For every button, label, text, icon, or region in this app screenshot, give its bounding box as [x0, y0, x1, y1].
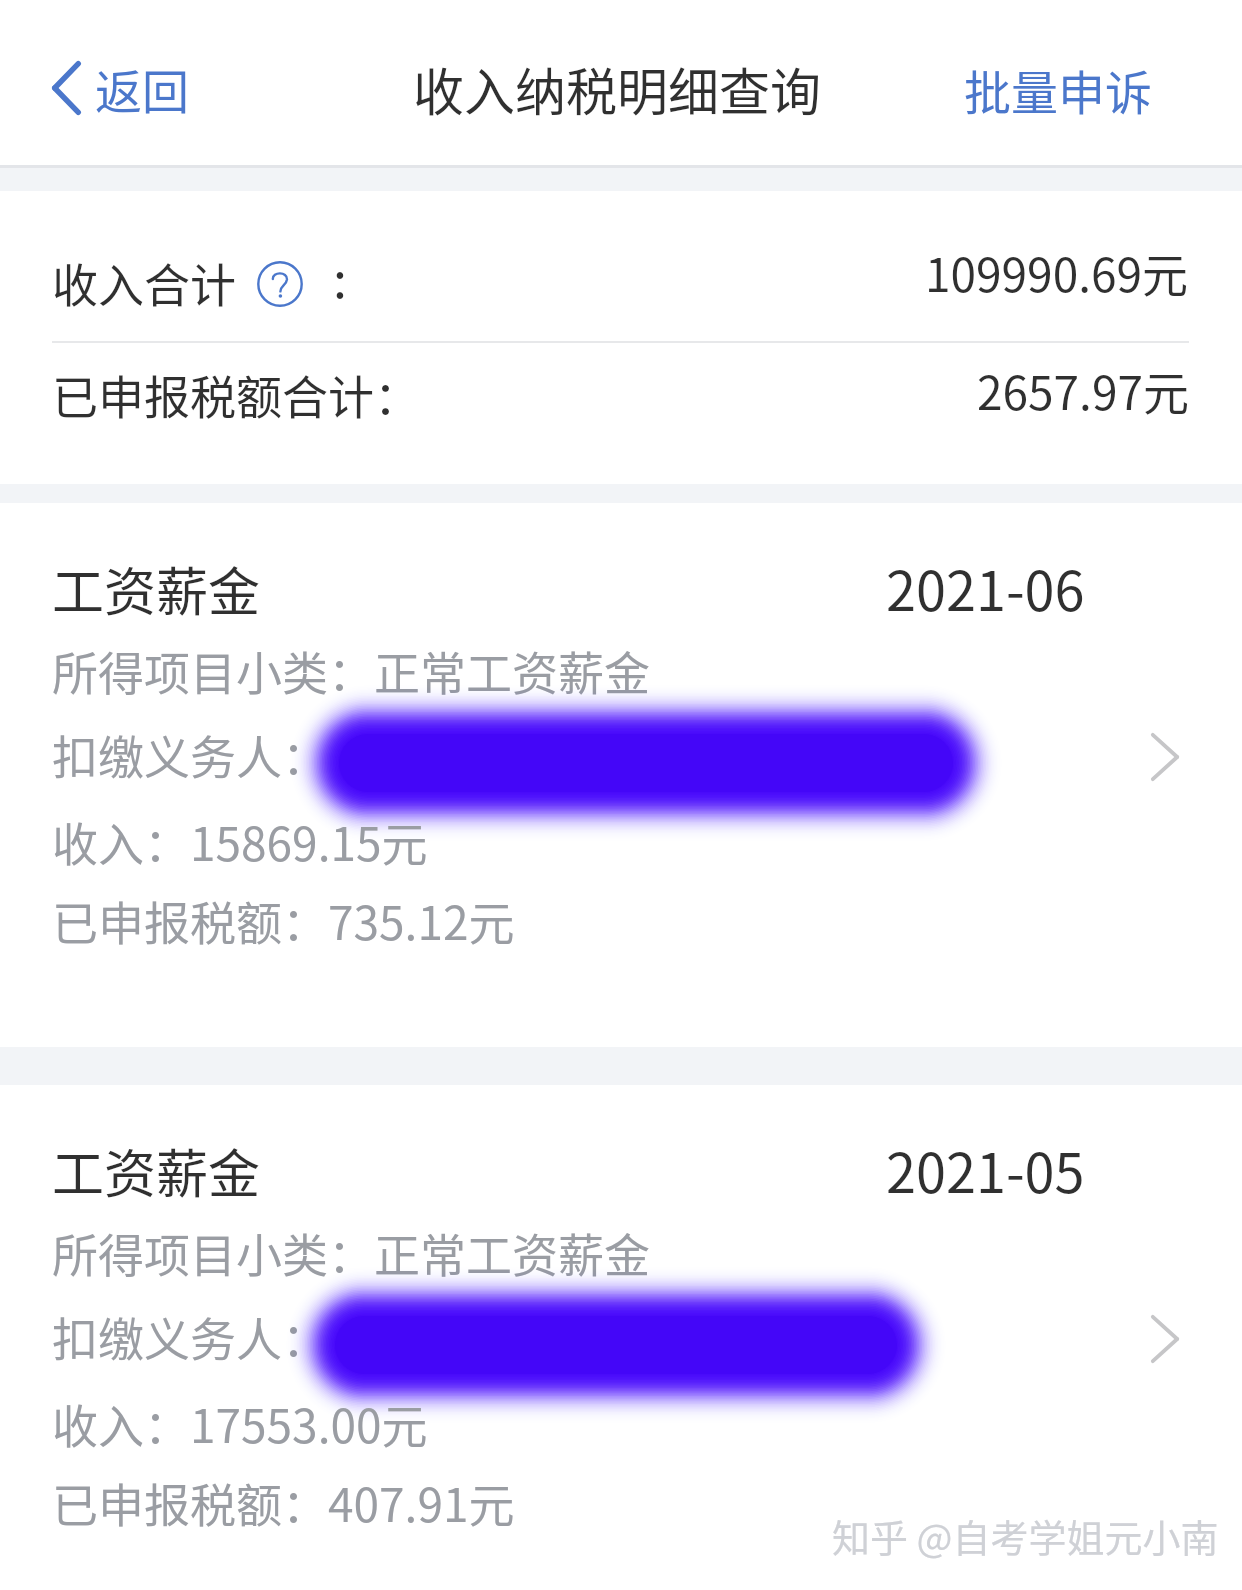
other: 查看明细 — [1149, 731, 1181, 783]
staticText: : — [333, 240, 347, 312]
staticText: 收入合计 — [52, 249, 236, 316]
button[interactable]: 收入合计帮助说明 — [257, 261, 303, 307]
staticText: 2021-05 — [886, 1130, 1085, 1208]
staticText: 收入：15869.15元 — [52, 808, 428, 875]
button[interactable]: 返回 — [40, 44, 201, 132]
button[interactable]: 批量申诉 — [952, 43, 1164, 135]
staticText: 知乎 @自考学姐元小南 — [832, 1508, 1219, 1563]
staticText: 所得项目小类：正常工资薪金 — [52, 1219, 650, 1286]
staticText: 109990.69元 — [925, 239, 1189, 306]
staticText: 2021-06 — [886, 548, 1085, 626]
staticText: 工资薪金 — [52, 1133, 261, 1208]
staticText: 收入纳税明细查询 — [413, 52, 822, 126]
staticText: 扣缴义务人： — [52, 1303, 328, 1370]
button[interactable]: 工资薪金 — [0, 503, 1242, 1047]
staticText: 已申报税额合计： — [52, 361, 420, 428]
staticText: 已申报税额：407.91元 — [52, 1469, 515, 1536]
staticText: 扣缴义务人： — [52, 721, 328, 788]
staticText: 2657.97元 — [977, 357, 1189, 424]
staticText: 已申报税额：735.12元 — [52, 887, 515, 954]
other: 查看明细 — [1149, 1313, 1181, 1365]
button[interactable]: 工资薪金 — [0, 1085, 1242, 1590]
staticText: 工资薪金 — [52, 551, 261, 626]
staticText: 所得项目小类：正常工资薪金 — [52, 637, 650, 704]
staticText: 返回 — [95, 54, 189, 122]
staticText: 收入：17553.00元 — [52, 1390, 428, 1457]
